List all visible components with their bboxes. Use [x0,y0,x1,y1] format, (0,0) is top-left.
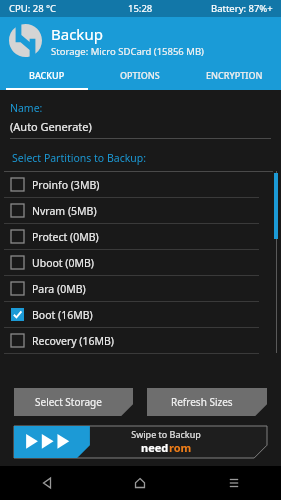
staticText: Storage: Micro SDCard (15856 MB) [51,45,204,58]
staticText: Recovery (16MB) [32,334,114,348]
staticText: Uboot (0MB) [32,256,95,270]
button[interactable]: Refresh Sizes [147,388,267,416]
staticText: Select Partitions to Backup: [12,151,147,165]
button[interactable]: Swipe to Backup [14,426,267,458]
button[interactable]: Select Storage [14,388,133,416]
button[interactable]: Boot (16MB) [0,302,281,327]
staticText: rom [169,440,192,455]
staticText: 15:28 [128,2,153,15]
button[interactable]: (Auto Generate) [10,119,271,139]
staticText: Swipe to Backup [131,428,201,440]
button[interactable]: Protect (0MB) [0,224,281,249]
button[interactable]: Proinfo (3MB) [0,172,281,197]
button[interactable]: Nvram (5MB) [0,198,281,223]
staticText: Proinfo (3MB) [32,178,100,192]
button[interactable]: Home [93,466,187,500]
button[interactable]: ENCRYPTION [187,64,281,90]
button[interactable]: Recovery (16MB) [0,328,281,353]
button[interactable]: BACKUP [0,64,93,90]
button[interactable]: Menu [187,466,281,500]
staticText: CPU: 28 °C [9,2,57,15]
button[interactable]: Back [0,466,93,500]
staticText: Boot (16MB) [32,308,93,322]
staticText: Nvram (5MB) [32,204,97,218]
staticText: Protect (0MB) [32,230,99,244]
staticText: ENCRYPTION [206,69,263,81]
staticText: Battery: 87%+ [211,2,273,15]
button[interactable]: OPTIONS [93,64,187,90]
button[interactable]: Para (0MB) [0,276,281,301]
staticText: Para (0MB) [32,282,86,296]
staticText: (Auto Generate) [10,119,92,134]
staticText: BACKUP [29,69,65,81]
staticText: Backup [51,24,103,44]
staticText: need [141,440,169,455]
button[interactable]: Uboot (0MB) [0,250,281,275]
staticText: Refresh Sizes [171,395,233,409]
staticText: Select Storage [35,395,102,409]
staticText: OPTIONS [120,69,160,81]
staticText: Name: [10,101,43,115]
